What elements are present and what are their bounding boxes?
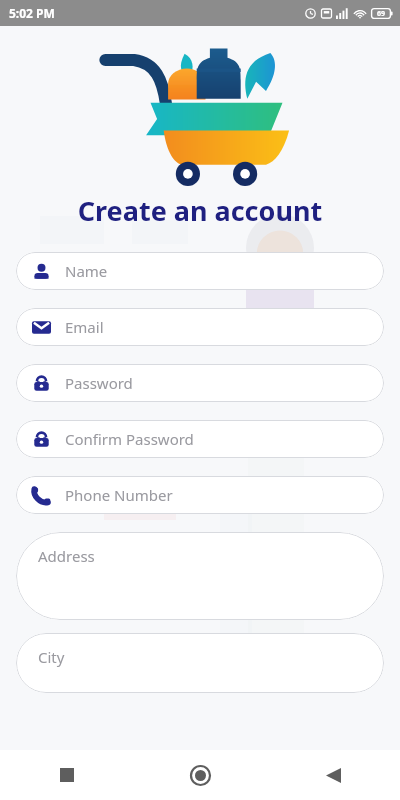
button[interactable]: City [16,633,384,693]
button[interactable]: Confirm Password [16,420,384,458]
staticText: 69 [377,9,386,19]
staticText: City [38,647,65,667]
staticText: Address [38,546,95,566]
staticText: Name [65,261,108,281]
staticText: 5:02 PM [9,5,55,21]
button[interactable]: Home [134,750,267,800]
button[interactable]: Phone Number [16,476,384,514]
button[interactable]: Back [267,750,400,800]
button[interactable]: Address [16,532,384,620]
button[interactable]: Name [16,252,384,290]
staticText: Phone Number [65,485,173,505]
button[interactable]: Recent apps [0,750,134,800]
staticText: Email [65,317,104,337]
staticText: Confirm Password [65,429,194,449]
staticText: Password [65,373,133,393]
button[interactable]: Email [16,308,384,346]
staticText: Create an account [0,192,400,229]
button[interactable]: Password [16,364,384,402]
